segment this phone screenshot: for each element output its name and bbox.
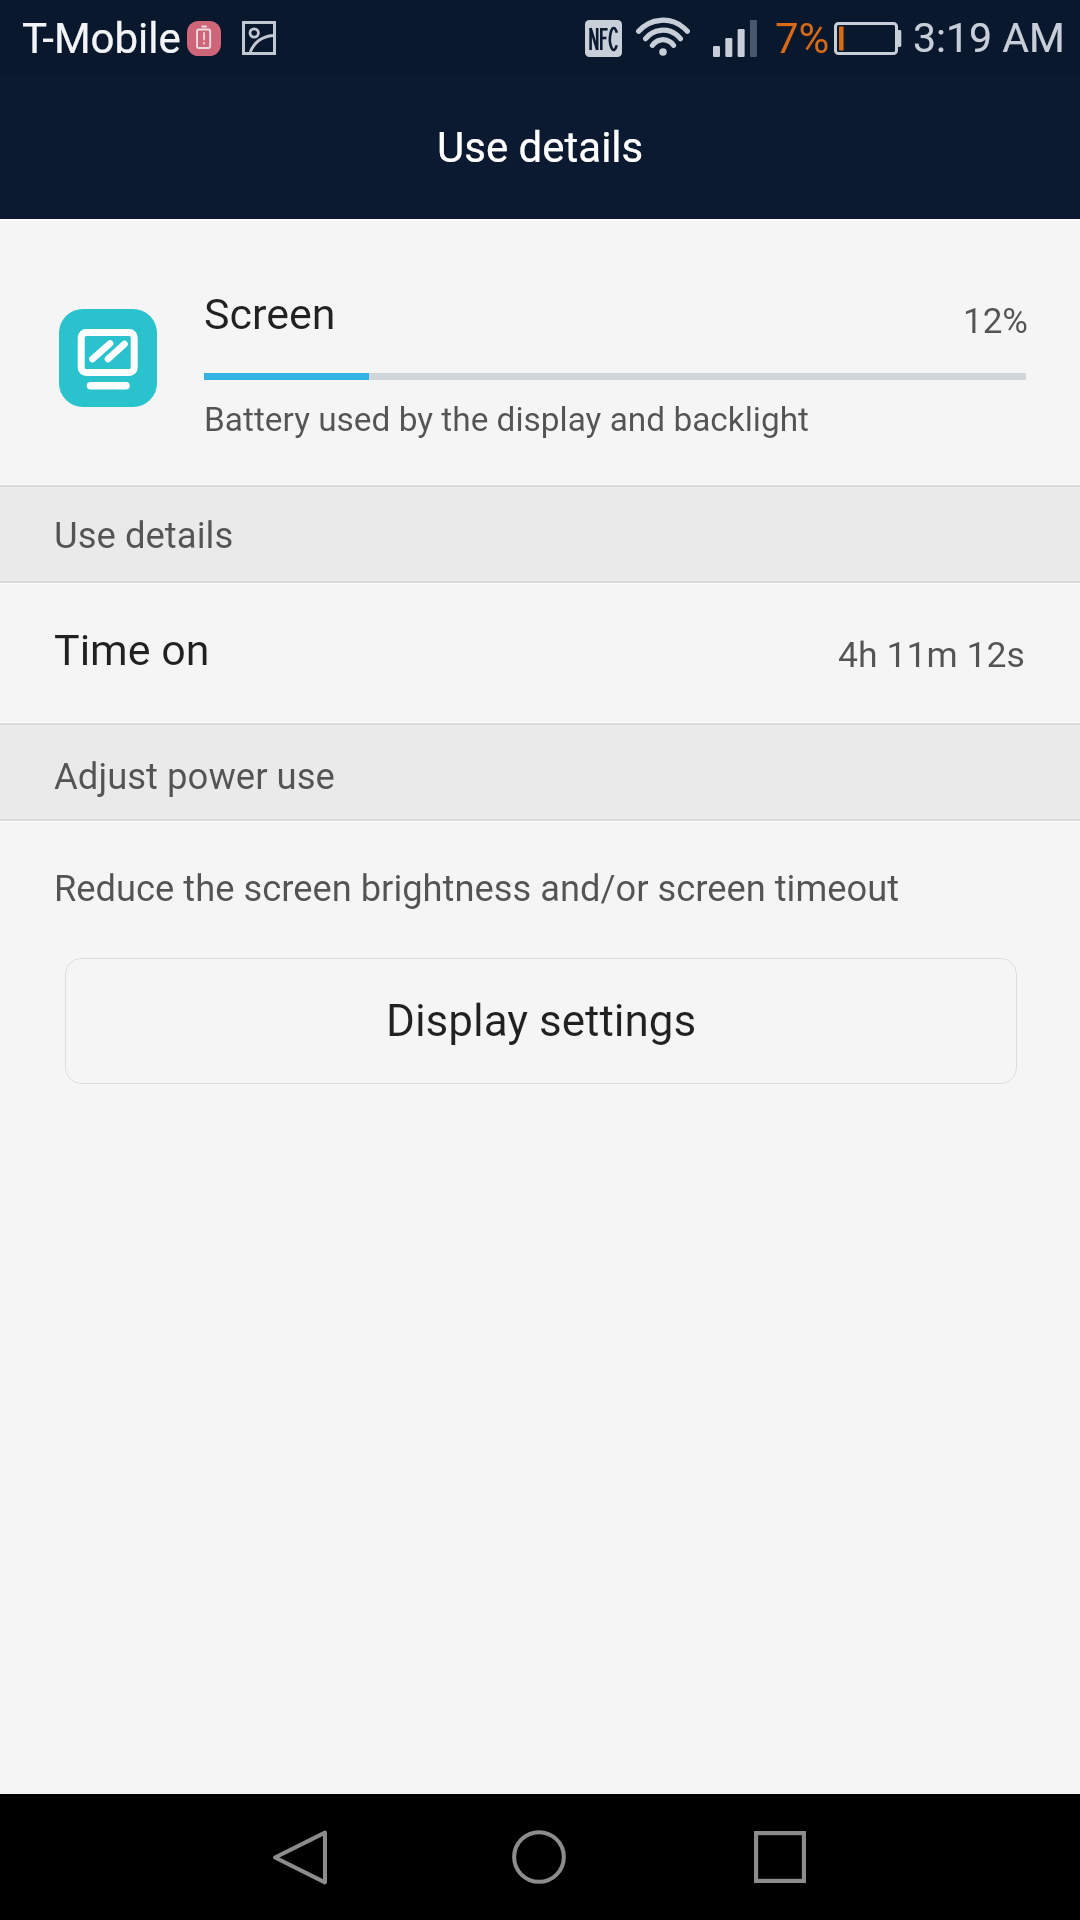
- button[interactable]: Home: [479, 1794, 599, 1920]
- staticText: Battery used by the display and backligh…: [204, 400, 810, 439]
- staticText: Time on: [54, 625, 210, 675]
- button[interactable]: Back: [240, 1794, 360, 1920]
- staticText: 7%: [775, 14, 830, 63]
- staticText: Adjust power use: [54, 755, 335, 798]
- staticText: Use details: [437, 123, 644, 172]
- staticText: 12%: [963, 301, 1028, 342]
- staticText: 4h 11m 12s: [838, 634, 1025, 676]
- button[interactable]: Time on: [0, 584, 1080, 722]
- button[interactable]: Recents: [720, 1794, 840, 1920]
- button[interactable]: Display settings: [65, 958, 1017, 1084]
- staticText: 3:19 AM: [913, 14, 1065, 62]
- staticText: Reduce the screen brightness and/or scre…: [54, 867, 900, 910]
- staticText: Use details: [54, 514, 234, 557]
- staticText: Display settings: [386, 995, 697, 1047]
- staticText: Screen: [204, 289, 336, 339]
- staticText: T-Mobile: [22, 14, 181, 63]
